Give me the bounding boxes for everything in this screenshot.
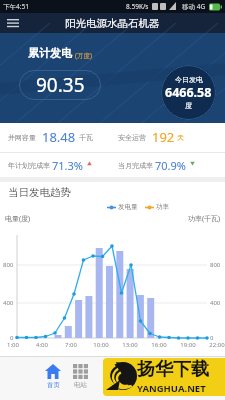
- staticText: 16:00: [151, 341, 167, 349]
- staticText: 移动 4G: [182, 2, 206, 11]
- staticText: 400: [3, 299, 14, 307]
- staticText: 功率: [156, 203, 169, 211]
- staticText: 电量(度): [5, 214, 31, 224]
- staticText: 71.3%: [52, 158, 83, 173]
- staticText: 6466.58: [165, 84, 212, 101]
- button[interactable]: 扬华下载: [103, 358, 225, 396]
- staticText: 扬华下载: [137, 358, 209, 381]
- staticText: 22:00: [209, 341, 225, 349]
- button[interactable]: 电站: [65, 364, 95, 389]
- button[interactable]: [7, 19, 19, 28]
- staticText: YANGHUA.NET: [137, 382, 206, 395]
- staticText: 今日发电: [175, 75, 203, 84]
- staticText: (万度): [75, 51, 92, 60]
- staticText: 度: [185, 101, 192, 110]
- staticText: 发电量: [118, 203, 138, 211]
- staticText: 90.35: [36, 72, 85, 98]
- staticText: 电站: [74, 381, 87, 389]
- staticText: 首页: [47, 381, 60, 389]
- staticText: 800: [210, 261, 221, 269]
- staticText: 13:00: [122, 341, 138, 349]
- staticText: 192: [152, 128, 175, 146]
- staticText: 安全运营: [118, 133, 146, 142]
- staticText: 0: [10, 334, 14, 342]
- staticText: 下午4:51: [3, 2, 29, 11]
- staticText: 累计发电: [28, 46, 72, 60]
- staticText: 并网容量: [8, 133, 36, 142]
- staticText: 10:00: [93, 341, 109, 349]
- staticText: 400: [210, 299, 221, 307]
- staticText: 阳光电源水晶石机器: [65, 17, 160, 30]
- staticText: 800: [3, 261, 14, 269]
- staticText: 7:00: [63, 341, 79, 349]
- button[interactable]: 今日发电: [161, 65, 216, 120]
- staticText: 功率(千瓦): [188, 214, 221, 224]
- staticText: 0: [210, 334, 214, 342]
- staticText: 天: [177, 133, 184, 142]
- button[interactable]: 首页: [38, 364, 68, 389]
- button[interactable]: 并网容量: [0, 123, 225, 152]
- button[interactable]: 90.35: [19, 70, 101, 100]
- button[interactable]: 年计划完成率: [0, 153, 225, 177]
- staticText: 1:00: [5, 341, 21, 349]
- staticText: 千瓦: [79, 133, 93, 142]
- staticText: 当月完成率: [118, 161, 153, 170]
- staticText: 年计划完成率: [8, 161, 50, 170]
- staticText: 19:00: [180, 341, 196, 349]
- staticText: 8.59K/s: [126, 2, 149, 11]
- staticText: 18.48: [42, 128, 76, 146]
- staticText: 当日发电趋势: [8, 186, 71, 199]
- staticText: 4:00: [34, 341, 50, 349]
- staticText: 70.9%: [155, 158, 186, 173]
